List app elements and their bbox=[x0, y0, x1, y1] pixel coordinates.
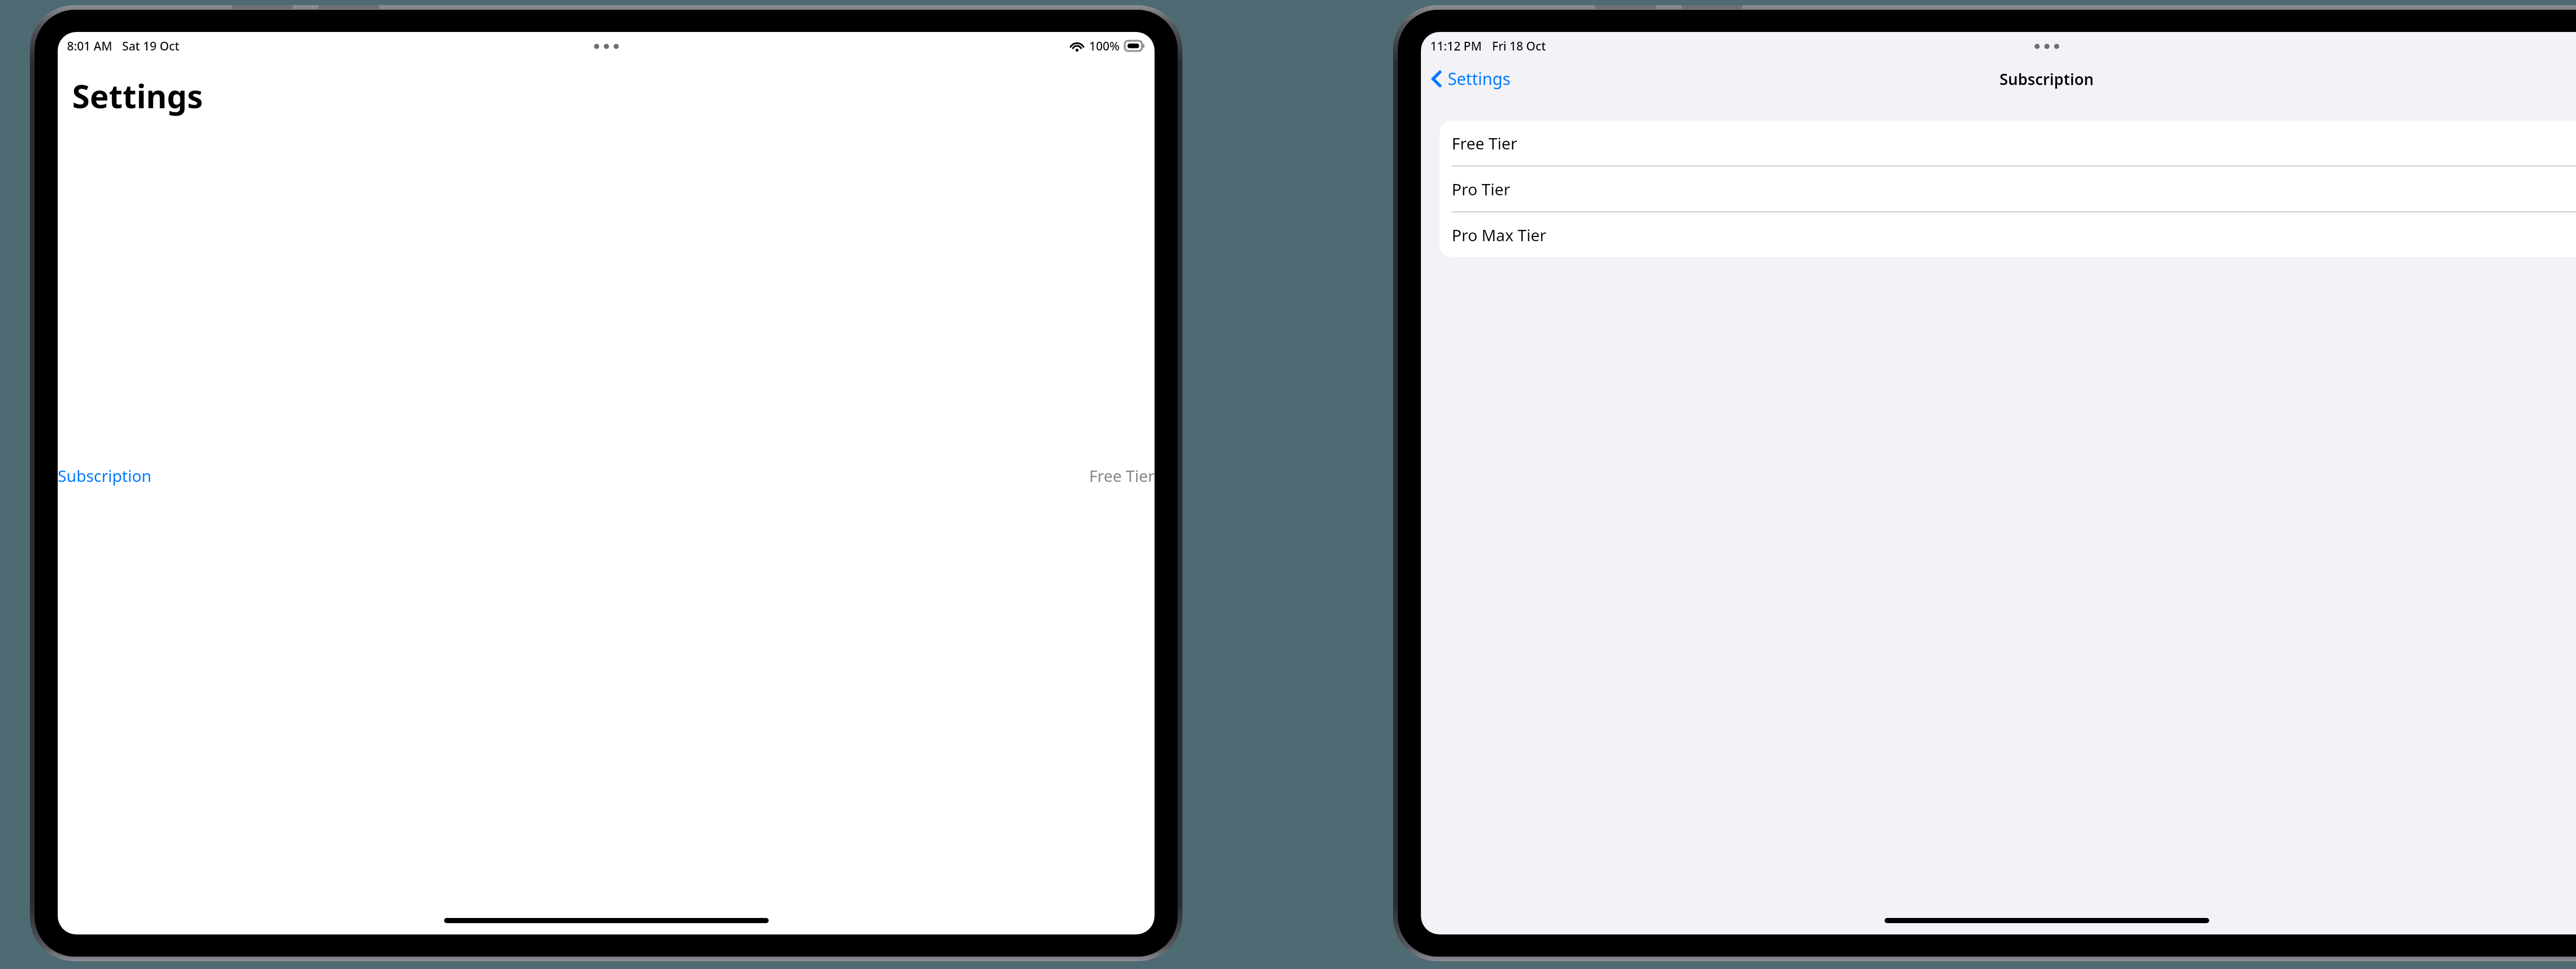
staticText: Subscription bbox=[1999, 69, 2094, 90]
other: Back bbox=[1431, 70, 1442, 88]
staticText: 8:01 AM bbox=[67, 38, 112, 54]
staticText: Settings bbox=[1448, 68, 1511, 90]
staticText: 100% bbox=[1089, 38, 1120, 54]
staticText: Settings bbox=[72, 74, 204, 118]
button[interactable]: Pro Tier bbox=[1439, 166, 2576, 211]
staticText: Pro Tier bbox=[1452, 178, 1511, 200]
staticText: 11:12 PM bbox=[1430, 38, 1482, 54]
button[interactable]: Pro Max Tier bbox=[1439, 212, 2576, 257]
staticText: Free Tier bbox=[1452, 132, 1517, 154]
staticText: Pro Max Tier bbox=[1452, 224, 1547, 246]
staticText: Fri 18 Oct bbox=[1492, 38, 1546, 54]
staticText: Free Tier bbox=[1089, 465, 1155, 487]
button[interactable]: Subscription bbox=[58, 460, 1155, 492]
button[interactable]: Free Tier bbox=[1439, 121, 2576, 165]
button[interactable]: Back bbox=[1428, 64, 1514, 93]
staticText: Sat 19 Oct bbox=[122, 38, 180, 54]
staticText: Subscription bbox=[58, 465, 151, 487]
